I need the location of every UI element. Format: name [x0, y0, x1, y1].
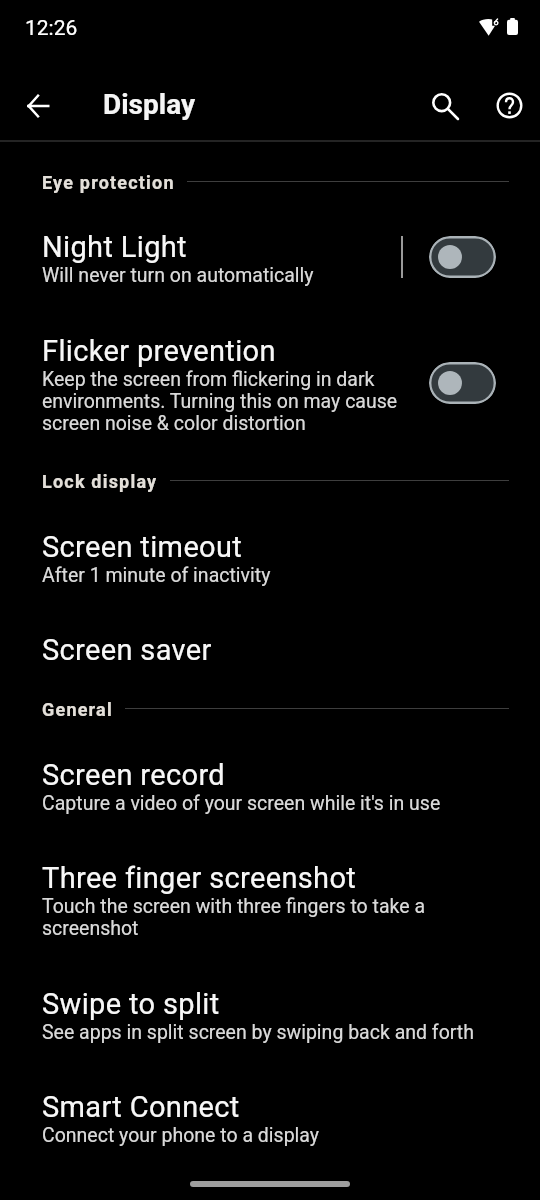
button[interactable]: Back: [9, 78, 66, 134]
staticText: 12:26: [25, 16, 78, 41]
staticText: Display: [103, 88, 196, 121]
button[interactable]: [0, 740, 540, 832]
staticText: Capture a video of your screen while it'…: [42, 792, 512, 815]
button[interactable]: [0, 969, 540, 1061]
button[interactable]: [0, 843, 540, 957]
staticText: Flicker prevention: [42, 334, 276, 368]
staticText: Screen record: [42, 758, 226, 792]
button[interactable]: [0, 1072, 540, 1164]
button[interactable]: Flicker prevention switch, off: [429, 362, 496, 404]
staticText: Screen timeout: [42, 530, 243, 564]
button[interactable]: [0, 615, 540, 681]
staticText: Eye protection: [42, 172, 175, 193]
staticText: Three finger screenshot: [42, 861, 357, 895]
staticText: Lock display: [42, 471, 158, 492]
button[interactable]: [0, 512, 540, 604]
staticText: Keep the screen from flickering in dark …: [42, 368, 410, 435]
staticText: See apps in split screen by swiping back…: [42, 1021, 512, 1044]
button[interactable]: Night Light switch, off: [429, 236, 496, 278]
button[interactable]: Help: [481, 77, 537, 133]
staticText: Swipe to split: [42, 987, 220, 1021]
staticText: General: [42, 699, 113, 720]
button[interactable]: Search: [418, 79, 474, 135]
button[interactable]: [0, 316, 540, 452]
staticText: Smart Connect: [42, 1090, 240, 1124]
staticText: Will never turn on automatically: [42, 264, 342, 287]
staticText: Night Light: [42, 230, 187, 264]
staticText: Touch the screen with three fingers to t…: [42, 895, 447, 940]
staticText: After 1 minute of inactivity: [42, 564, 512, 587]
button[interactable]: [0, 212, 540, 304]
staticText: Connect your phone to a display: [42, 1124, 512, 1147]
staticText: Screen saver: [42, 633, 212, 667]
